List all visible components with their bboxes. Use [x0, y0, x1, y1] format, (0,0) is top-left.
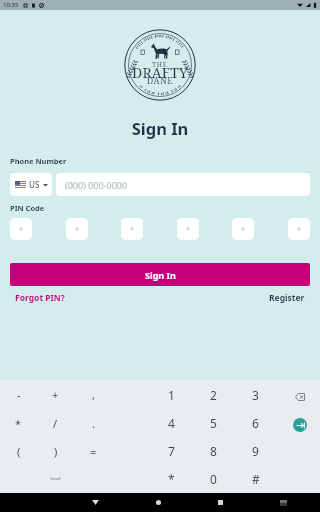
button[interactable]: -	[0, 380, 37, 409]
button[interactable]: Forgot PIN?	[15, 292, 65, 304]
button[interactable]: Register	[269, 292, 305, 304]
staticText: 6	[252, 415, 259, 431]
staticText: 10:35	[3, 1, 19, 9]
staticText: DRAFTY	[132, 63, 189, 82]
button[interactable]	[66, 218, 88, 240]
button[interactable]	[10, 218, 32, 240]
staticText: US	[29, 179, 40, 190]
button[interactable]	[121, 218, 143, 240]
button[interactable]: Sign In	[10, 263, 310, 286]
button[interactable]: =	[74, 437, 112, 465]
button[interactable]: +	[37, 380, 74, 409]
button[interactable]: Recents	[211, 493, 230, 512]
staticText: 9	[252, 443, 259, 459]
button[interactable]: .	[74, 409, 112, 437]
button[interactable]: 6	[234, 409, 277, 437]
staticText: (000) 000-0000	[65, 179, 128, 191]
staticText: /	[53, 416, 58, 431]
staticText: 4	[168, 415, 175, 431]
staticText: 7	[168, 443, 175, 459]
button[interactable]: 5	[192, 409, 234, 437]
button[interactable]: Enter	[293, 418, 307, 432]
button[interactable]: Backspace	[290, 387, 310, 407]
staticText: =	[90, 444, 97, 459]
button[interactable]: 4	[150, 409, 192, 437]
staticText: Sign In	[0, 117, 320, 139]
button[interactable]: Back	[86, 493, 105, 512]
button[interactable]	[232, 218, 254, 240]
button[interactable]: 2	[192, 380, 234, 409]
staticText: )	[54, 444, 58, 459]
staticText: Sign In	[145, 269, 176, 281]
button[interactable]: 3	[234, 380, 277, 409]
button[interactable]: Space	[37, 465, 74, 493]
button[interactable]: (000) 000-0000	[56, 173, 310, 196]
staticText: *	[168, 471, 175, 487]
button[interactable]: #	[234, 465, 277, 493]
button[interactable]: *	[0, 409, 37, 437]
button[interactable]: 0	[192, 465, 234, 493]
staticText: #	[252, 471, 260, 487]
button[interactable]	[177, 218, 199, 240]
staticText: -	[17, 387, 21, 402]
button[interactable]: 1	[150, 380, 192, 409]
staticText: +	[52, 387, 59, 402]
button[interactable]: Home	[149, 493, 168, 512]
button[interactable]: US	[10, 173, 52, 196]
button[interactable]: (	[0, 437, 37, 465]
staticText: 0	[210, 471, 217, 487]
staticText: (	[17, 444, 21, 459]
staticText: *	[15, 416, 22, 431]
staticText: 3	[252, 387, 259, 403]
button[interactable]: 8	[192, 437, 234, 465]
staticText: 2	[210, 387, 217, 403]
button[interactable]: 9	[234, 437, 277, 465]
button[interactable]: 7	[150, 437, 192, 465]
staticText: Phone Number	[10, 156, 67, 166]
button[interactable]: *	[150, 465, 192, 493]
staticText: ,	[92, 387, 95, 402]
button[interactable]: )	[37, 437, 74, 465]
button[interactable]: ,	[74, 380, 112, 409]
button[interactable]: Keyboard	[274, 493, 293, 512]
staticText: THE	[152, 60, 168, 69]
staticText: DANE	[147, 75, 174, 87]
staticText: 1	[168, 387, 175, 403]
staticText: 8	[210, 443, 217, 459]
button[interactable]: /	[37, 409, 74, 437]
staticText: 5	[210, 415, 217, 431]
staticText: .	[92, 416, 95, 431]
staticText: PIN Code	[10, 203, 45, 213]
button[interactable]	[288, 218, 310, 240]
